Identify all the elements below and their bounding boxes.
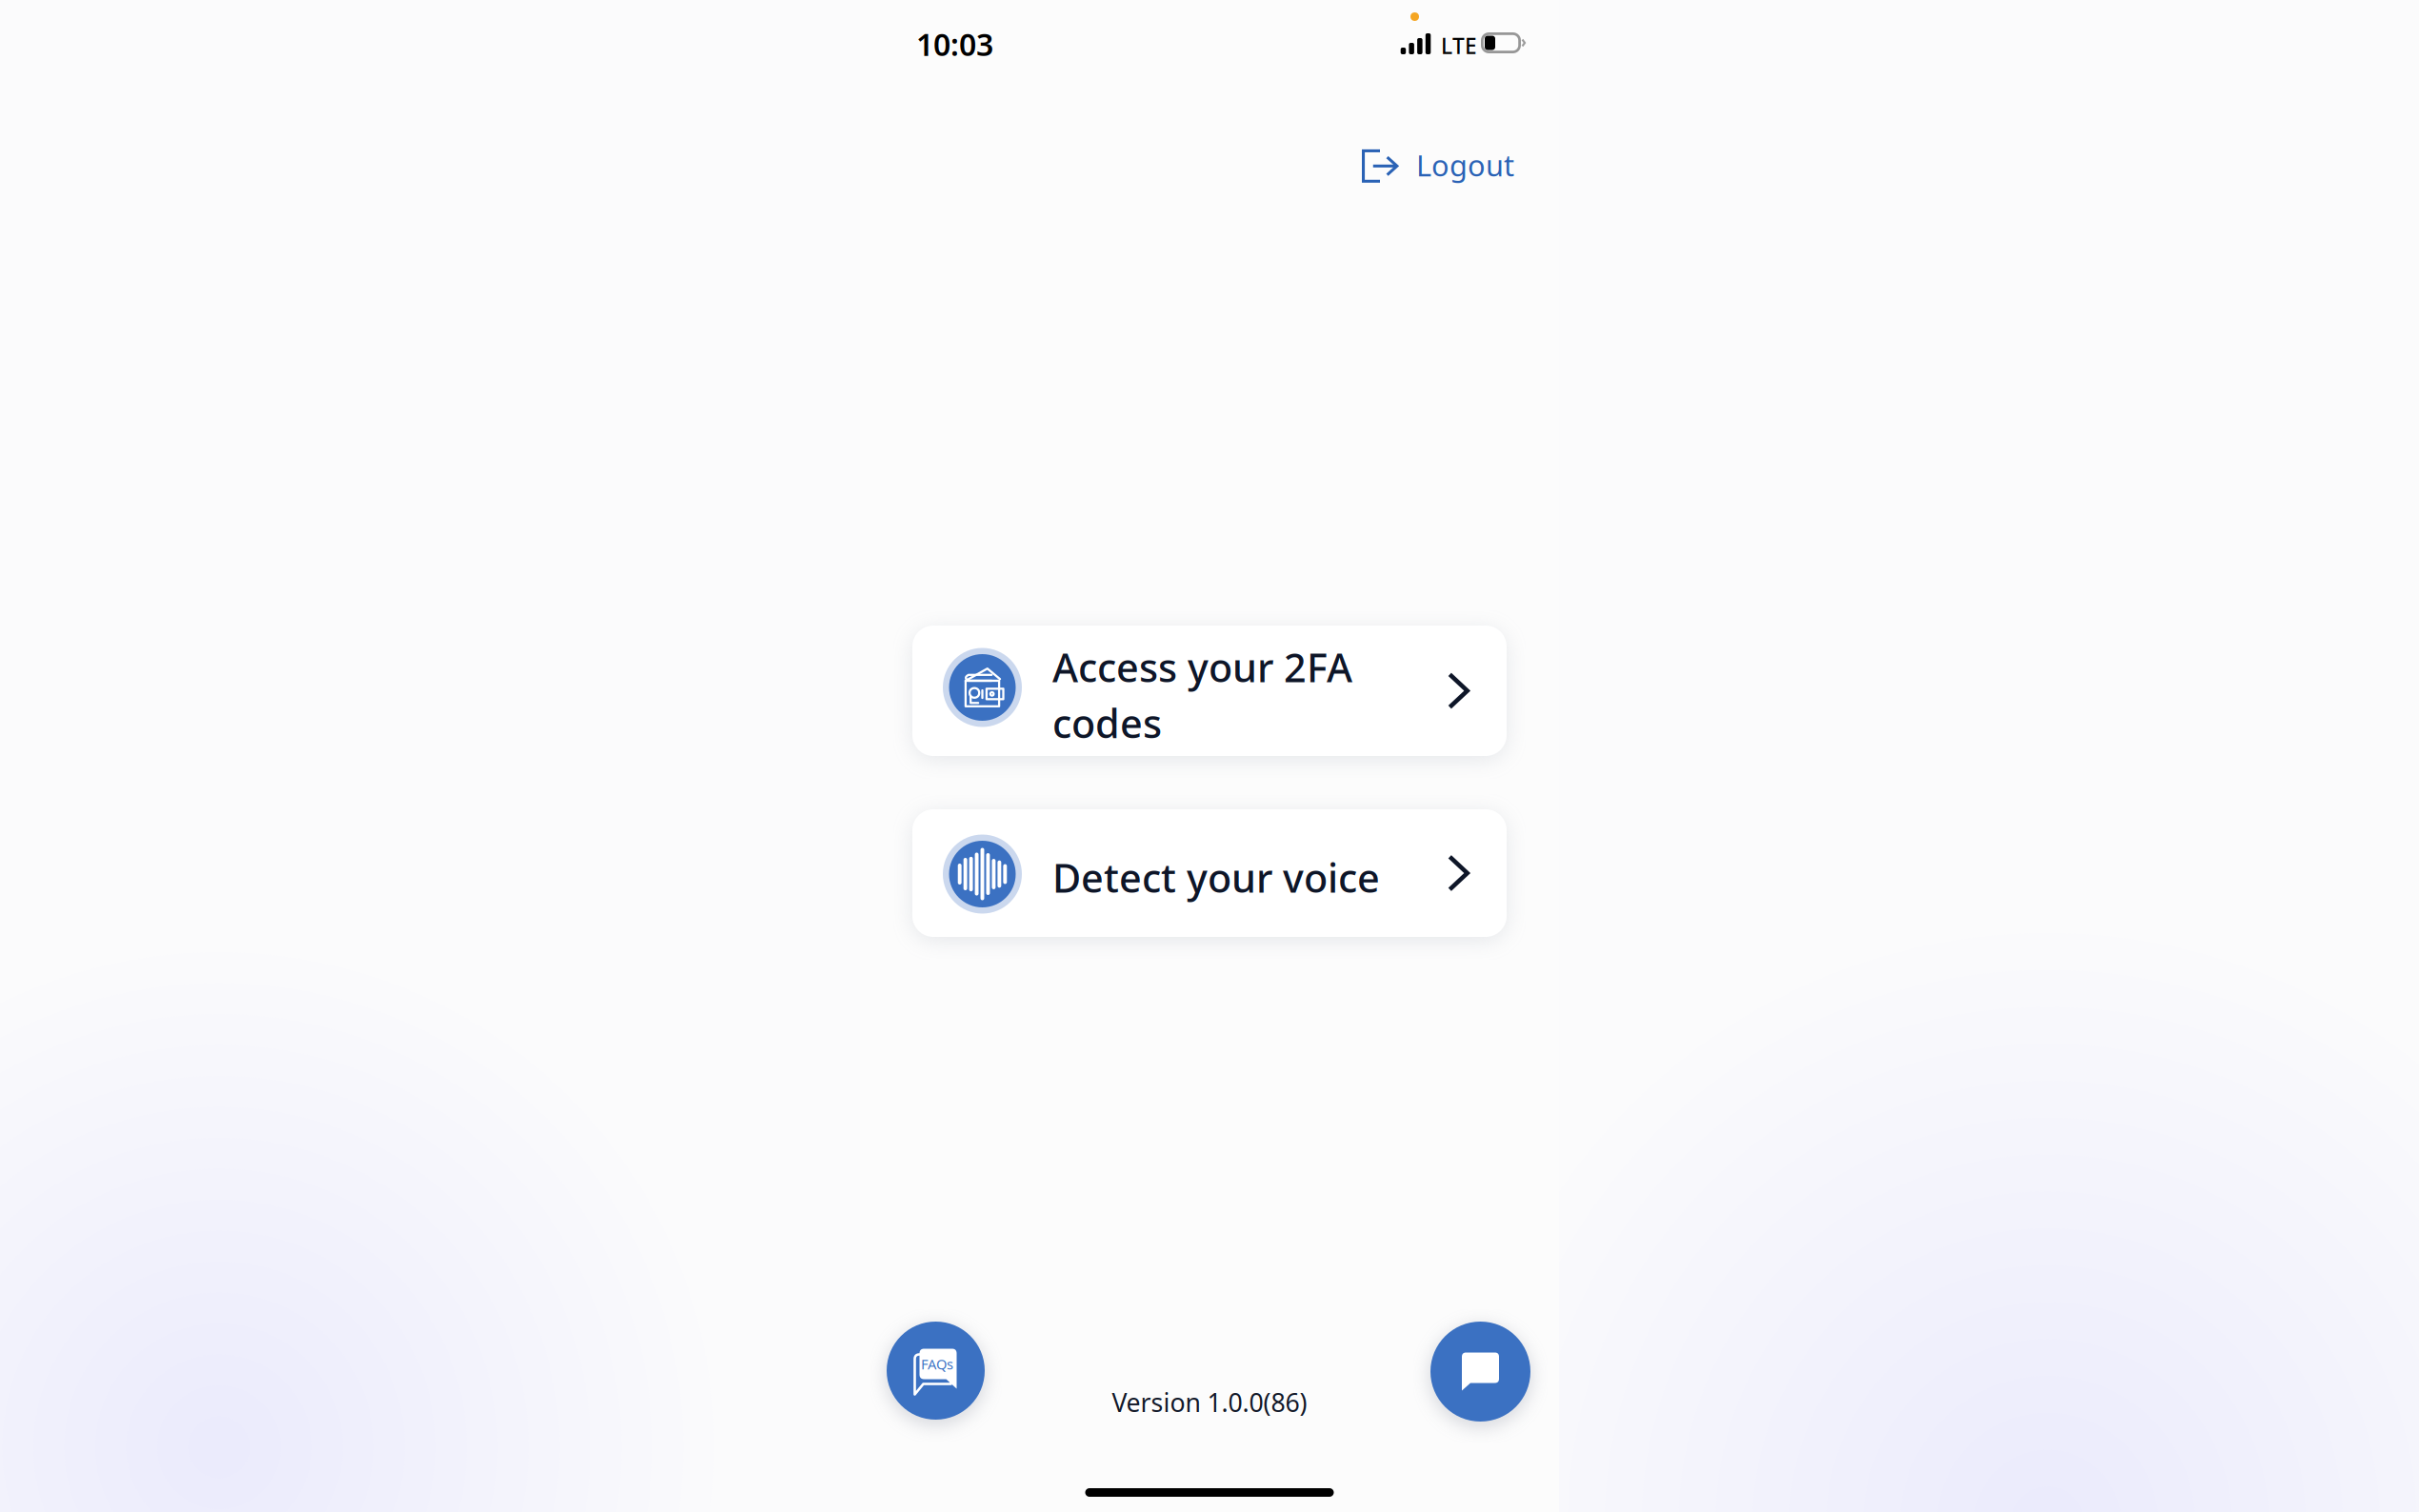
button[interactable]: Access your 2FA codes	[912, 626, 1507, 756]
button[interactable]: Chat with support	[1430, 1322, 1530, 1422]
staticText: Logout	[1416, 146, 1514, 184]
button[interactable]: Logout	[1350, 134, 1526, 198]
staticText: LTE	[1441, 31, 1477, 60]
staticText: Version 1.0.0(86)	[1112, 1385, 1307, 1419]
button[interactable]: FAQs	[887, 1322, 985, 1420]
staticText: Access your 2FA codes	[1052, 641, 1352, 749]
staticText: Detect your voice	[1052, 851, 1380, 903]
button[interactable]: Detect your voice	[912, 809, 1507, 937]
staticText: FAQs	[921, 1355, 953, 1373]
staticText: 10:03	[916, 24, 993, 64]
